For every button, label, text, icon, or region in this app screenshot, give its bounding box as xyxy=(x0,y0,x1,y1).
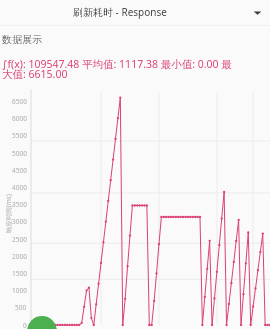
staticText: ∫f(x): 109547.48 平均值: 1117.38 最小值: 0.00 … xyxy=(2,57,232,82)
staticText: 刷新耗时 - Response xyxy=(73,5,167,19)
button[interactable]: More options xyxy=(244,0,270,25)
button[interactable]: Add xyxy=(27,316,57,329)
staticText: 数据展示 xyxy=(2,33,42,46)
